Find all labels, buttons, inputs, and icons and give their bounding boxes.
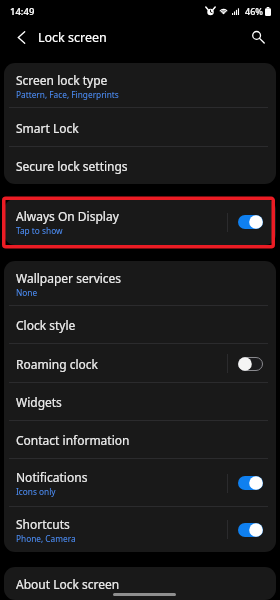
staticText: Screen lock type	[16, 72, 108, 88]
staticText: Clock style	[16, 317, 76, 333]
button[interactable]: Contact information	[4, 421, 276, 459]
staticText: None	[16, 287, 38, 298]
staticText: Smart Lock	[16, 120, 79, 136]
staticText: 14:49	[10, 5, 35, 18]
button[interactable]: Widgets	[4, 383, 276, 421]
button[interactable]: Toggle Shortcuts	[238, 523, 263, 537]
staticText: Icons only	[16, 486, 56, 497]
button[interactable]: Clock style	[4, 306, 276, 344]
button[interactable]: Always On Display	[4, 199, 276, 245]
staticText: Phone, Camera	[16, 533, 76, 544]
button[interactable]: Smart Lock	[4, 108, 276, 147]
button[interactable]: Search	[248, 27, 269, 48]
staticText: Lock screen	[38, 29, 107, 46]
staticText: Always On Display	[16, 208, 119, 224]
staticText: Wallpaper services	[16, 270, 122, 286]
staticText: Widgets	[16, 394, 62, 410]
button[interactable]: About Lock screen	[4, 567, 276, 600]
button[interactable]: Toggle Always On Display	[238, 215, 263, 229]
button[interactable]: Wallpaper services	[4, 261, 276, 306]
staticText: Notifications	[16, 469, 88, 485]
staticText: Tap to show	[16, 225, 63, 236]
button[interactable]: Toggle Roaming clock	[238, 357, 263, 371]
staticText: 46%	[245, 5, 263, 17]
staticText: Pattern, Face, Fingerprints	[16, 89, 119, 100]
staticText: About Lock screen	[16, 576, 120, 592]
staticText: Secure lock settings	[16, 158, 128, 174]
staticText: Contact information	[16, 432, 130, 448]
button[interactable]: Toggle Notifications	[238, 476, 263, 490]
button[interactable]: Secure lock settings	[4, 147, 276, 184]
button[interactable]: Screen lock type	[4, 63, 276, 108]
button[interactable]: Notifications	[4, 459, 276, 507]
staticText: Shortcuts	[16, 516, 70, 532]
button[interactable]: Roaming clock	[4, 344, 276, 383]
button[interactable]: Back	[11, 27, 32, 48]
button[interactable]: Shortcuts	[4, 507, 276, 552]
staticText: Roaming clock	[16, 356, 98, 372]
